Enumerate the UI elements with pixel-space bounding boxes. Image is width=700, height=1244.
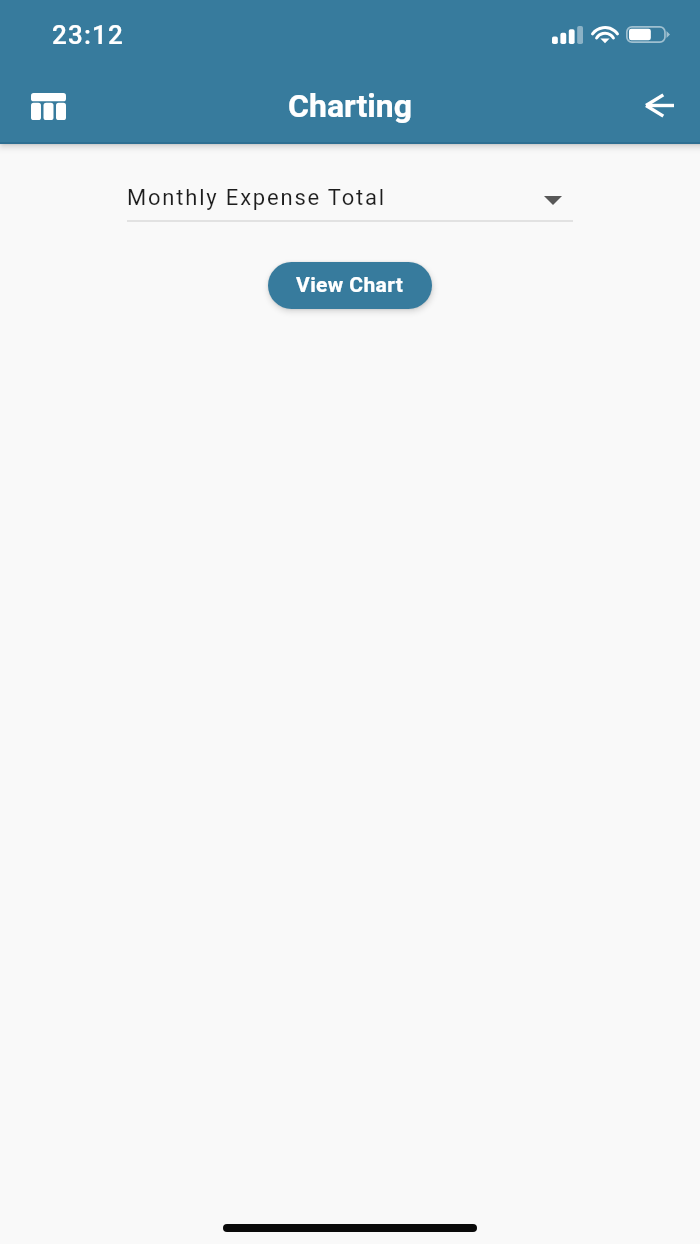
button[interactable]: Back: [626, 72, 692, 138]
button[interactable]: Table view: [15, 73, 81, 139]
button[interactable]: Monthly Expense Total: [127, 182, 573, 222]
button[interactable]: View Chart: [268, 262, 432, 309]
staticText: Charting: [288, 87, 412, 125]
staticText: View Chart: [296, 273, 404, 298]
staticText: Monthly Expense Total: [127, 185, 386, 211]
staticText: 23:12: [52, 20, 125, 50]
